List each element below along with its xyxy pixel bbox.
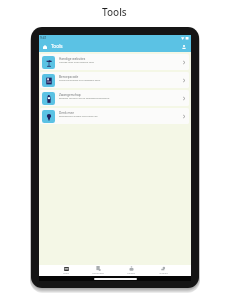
staticText: Handige websites: [59, 57, 86, 61]
button[interactable]: Tools: [50, 265, 82, 276]
staticText: Tools: [51, 43, 63, 50]
button[interactable]: Handige websites: [40, 54, 189, 70]
staticText: Zwangerschap: [59, 93, 81, 97]
staticText: Privacyrichtlijnen in je dagelijks werk: [59, 78, 101, 81]
staticText: Beroepscode: [59, 75, 79, 79]
button[interactable]: Nieuws: [114, 265, 147, 276]
staticText: Tools: [63, 272, 69, 275]
button[interactable]: Beroepscode: [40, 72, 189, 88]
staticText: Denk mee: [59, 111, 74, 115]
staticText: Nuttige links naar externe sites: [59, 60, 94, 63]
staticText: Tools: [102, 5, 127, 19]
button[interactable]: Home: [41, 43, 48, 50]
button[interactable]: Denk mee: [40, 108, 189, 124]
staticText: Bereken de duur van je zwangerschapsverl…: [59, 96, 110, 99]
staticText: Informatie: [92, 272, 104, 275]
staticText: 9:41: [40, 36, 47, 40]
staticText: Nieuws: [127, 272, 135, 275]
staticText: Beantwoord vragen voor jouw cao: [59, 114, 98, 117]
button[interactable]: Profile: [180, 43, 187, 50]
button[interactable]: Account: [147, 265, 180, 276]
button[interactable]: Zwangerschap: [40, 90, 189, 106]
staticText: Account: [159, 272, 168, 275]
button[interactable]: Informatie: [82, 265, 114, 276]
